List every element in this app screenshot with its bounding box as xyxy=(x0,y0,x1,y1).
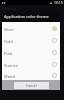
button[interactable]: Cancel xyxy=(14,82,49,89)
button[interactable]: Pink xyxy=(2,46,60,58)
button[interactable]: Sunrise xyxy=(2,58,60,70)
staticText: Gold xyxy=(4,39,13,44)
staticText: Pink xyxy=(4,51,13,56)
staticText: Wood xyxy=(4,74,15,79)
staticText: Application color theme xyxy=(4,14,49,19)
button[interactable]: Gold xyxy=(2,34,60,46)
staticText: Sunrise xyxy=(4,63,18,68)
staticText: 10:15 xyxy=(54,0,63,5)
staticText: Cancel xyxy=(26,83,37,88)
staticText: Settings xyxy=(2,6,18,11)
button[interactable]: Silver xyxy=(2,22,60,34)
button[interactable]: Wood xyxy=(2,70,60,80)
staticText: Silver xyxy=(4,27,15,32)
